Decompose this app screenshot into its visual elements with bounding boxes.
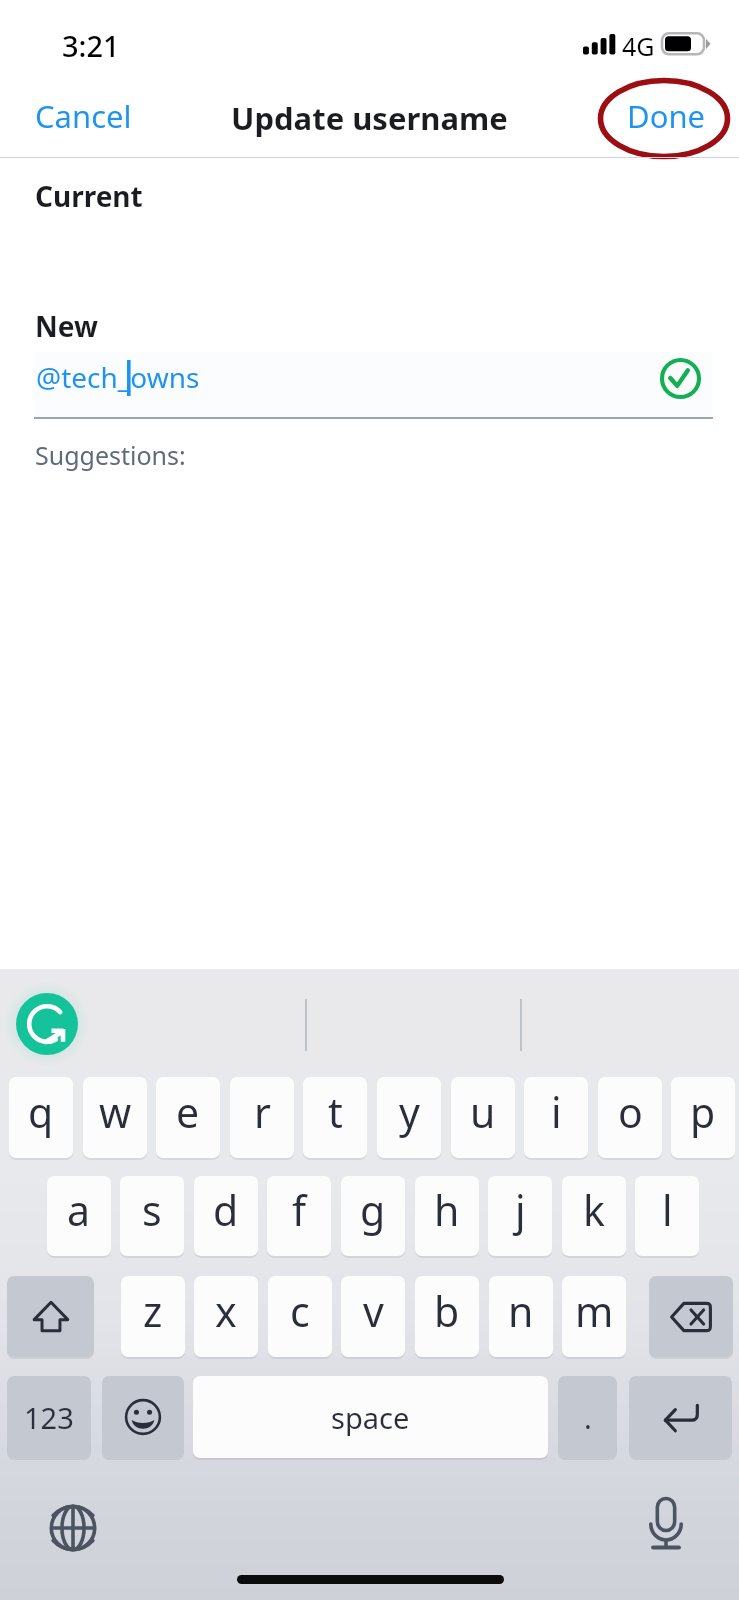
button[interactable]: Grammarly [16, 993, 78, 1055]
staticText: r [254, 1084, 271, 1140]
button[interactable]: h [415, 1176, 479, 1256]
button[interactable]: b [415, 1276, 479, 1357]
button[interactable]: n [489, 1276, 553, 1357]
staticText: 3:21 [62, 26, 120, 65]
button[interactable]: Dictate [638, 1495, 694, 1551]
staticText: d [213, 1182, 239, 1238]
staticText: t [328, 1084, 343, 1140]
button[interactable]: l [635, 1176, 699, 1256]
button[interactable]: e [156, 1077, 220, 1158]
staticText: @tech_owns [36, 358, 200, 396]
button[interactable]: Return [629, 1376, 732, 1458]
button[interactable]: Done [612, 85, 721, 147]
button[interactable]: y [377, 1077, 441, 1158]
button[interactable]: Cancel [20, 85, 147, 147]
staticText: q [28, 1084, 54, 1140]
staticText: x [215, 1283, 237, 1339]
button[interactable]: m [562, 1276, 626, 1357]
staticText: m [575, 1283, 614, 1339]
staticText: v [363, 1283, 384, 1339]
button[interactable]: u [451, 1077, 515, 1158]
staticText: b [434, 1283, 460, 1339]
button[interactable]: w [83, 1077, 147, 1158]
staticText: i [551, 1084, 562, 1140]
button[interactable]: i [524, 1077, 588, 1158]
button[interactable]: c [268, 1276, 332, 1357]
staticText: Suggestions: [35, 438, 186, 472]
button[interactable]: Switch keyboard [46, 1501, 99, 1554]
staticText: z [143, 1283, 163, 1339]
button[interactable]: 123 [7, 1376, 91, 1458]
button[interactable]: z [121, 1276, 185, 1357]
staticText: k [583, 1182, 605, 1238]
button[interactable]: t [303, 1077, 367, 1158]
staticText: 4G [622, 29, 655, 63]
button[interactable]: @tech_owns [0, 352, 739, 410]
button[interactable]: f [267, 1176, 331, 1256]
staticText: e [176, 1084, 200, 1140]
staticText: . [584, 1398, 592, 1437]
button[interactable]: k [562, 1176, 626, 1256]
staticText: space [331, 1398, 410, 1437]
button[interactable]: d [194, 1176, 258, 1256]
button[interactable]: Emoji [102, 1376, 184, 1458]
staticText: p [690, 1084, 716, 1140]
staticText: Done [627, 95, 706, 137]
staticText: s [142, 1182, 162, 1238]
button[interactable]: p [671, 1077, 735, 1158]
button[interactable]: j [488, 1176, 552, 1256]
staticText: h [434, 1182, 460, 1238]
staticText: g [360, 1182, 386, 1238]
staticText: j [515, 1182, 526, 1238]
staticText: u [470, 1084, 496, 1140]
staticText: Cancel [35, 95, 132, 137]
button[interactable]: r [230, 1077, 294, 1158]
button[interactable]: o [598, 1077, 662, 1158]
staticText: Current [35, 177, 143, 215]
staticText: l [662, 1182, 673, 1238]
button[interactable]: x [194, 1276, 258, 1357]
staticText: n [508, 1283, 534, 1339]
button[interactable]: g [341, 1176, 405, 1256]
staticText: New [35, 307, 98, 345]
button[interactable]: a [47, 1176, 111, 1256]
staticText: a [67, 1182, 91, 1238]
button[interactable]: . [558, 1376, 617, 1458]
staticText: Update username [231, 97, 508, 139]
staticText: c [290, 1283, 310, 1339]
button[interactable]: q [9, 1077, 73, 1158]
button[interactable]: s [120, 1176, 184, 1256]
button[interactable]: space [193, 1376, 548, 1458]
staticText: o [618, 1084, 643, 1140]
button[interactable]: v [341, 1276, 405, 1357]
button[interactable]: Shift [7, 1276, 94, 1357]
staticText: f [292, 1182, 307, 1238]
button[interactable]: Backspace [649, 1276, 733, 1357]
staticText: w [99, 1084, 132, 1140]
staticText: y [399, 1084, 420, 1140]
staticText: 123 [24, 1398, 74, 1437]
